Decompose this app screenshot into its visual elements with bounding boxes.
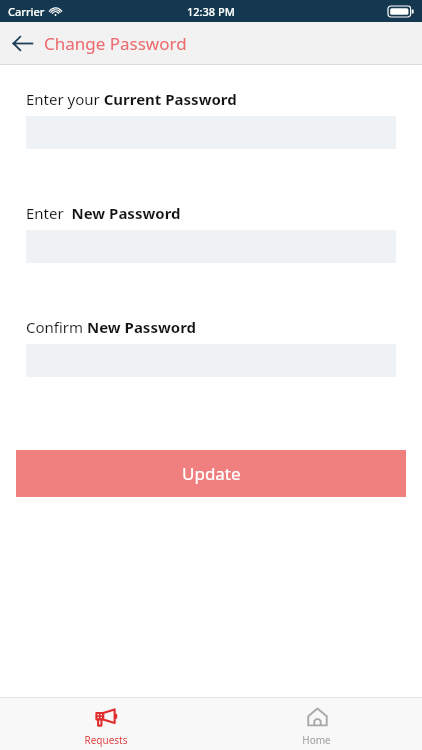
button[interactable]: Back [0, 22, 44, 64]
staticText: Home [302, 733, 331, 747]
staticText: 12:38 PM [187, 4, 235, 19]
button[interactable]: Update [16, 450, 406, 497]
button[interactable]: Requests [0, 698, 211, 750]
staticText: Change Password [44, 32, 187, 55]
staticText: Enter New Password [26, 203, 181, 223]
staticText: Confirm New Password [26, 317, 197, 337]
button[interactable]: Home [211, 698, 422, 750]
staticText: Enter your Current Password [26, 89, 237, 109]
staticText: Requests [84, 733, 128, 747]
staticText: Carrier [8, 4, 45, 19]
staticText: Update [182, 462, 241, 485]
